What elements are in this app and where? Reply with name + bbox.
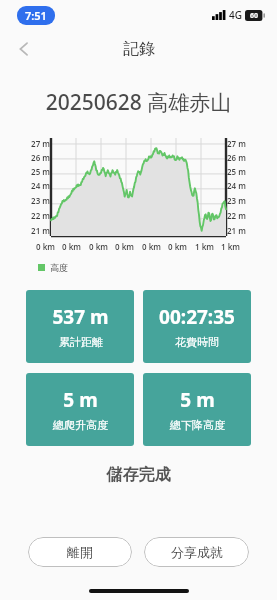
staticText: 記錄 xyxy=(123,39,155,59)
staticText: 22 m xyxy=(227,210,259,221)
staticText: 23 m xyxy=(18,195,50,206)
button[interactable]: 分享成就 xyxy=(144,537,249,567)
staticText: 5 m xyxy=(63,387,98,413)
staticText: 26 m xyxy=(227,152,259,163)
staticText: 總爬升高度 xyxy=(53,418,108,432)
staticText: 00:27:35 xyxy=(159,304,235,330)
staticText: 4G xyxy=(229,8,242,22)
staticText: 26 m xyxy=(18,152,50,163)
staticText: 0 km xyxy=(36,241,56,252)
staticText: 離開 xyxy=(67,544,93,560)
staticText: 分享成就 xyxy=(171,544,223,560)
staticText: 1 km xyxy=(221,241,241,252)
button[interactable]: 5 m xyxy=(143,373,251,446)
staticText: 25 m xyxy=(18,166,50,177)
staticText: 儲存完成 xyxy=(0,465,277,485)
staticText: 20250628 高雄赤山 xyxy=(0,88,277,117)
staticText: 0 km xyxy=(62,241,82,252)
staticText: 60 xyxy=(250,11,259,21)
staticText: 25 m xyxy=(227,166,259,177)
staticText: 累計距離 xyxy=(59,335,103,349)
staticText: 高度 xyxy=(50,262,68,273)
button[interactable]: Back xyxy=(6,31,42,67)
staticText: 總下降高度 xyxy=(170,418,225,432)
staticText: 22 m xyxy=(18,210,50,221)
staticText: 23 m xyxy=(227,195,259,206)
staticText: 537 m xyxy=(52,304,109,330)
staticText: 21 m xyxy=(18,225,50,236)
staticText: 0 km xyxy=(168,241,188,252)
button[interactable]: 離開 xyxy=(28,537,132,567)
staticText: 5 m xyxy=(180,387,215,413)
staticText: 1 km xyxy=(195,241,215,252)
staticText: 0 km xyxy=(142,241,162,252)
staticText: 0 km xyxy=(115,241,135,252)
staticText: 27 m xyxy=(18,138,50,149)
staticText: 21 m xyxy=(227,225,259,236)
staticText: 0 km xyxy=(89,241,109,252)
button[interactable]: 537 m xyxy=(26,290,134,363)
staticText: 花費時間 xyxy=(175,335,219,349)
staticText: 27 m xyxy=(227,138,259,149)
button[interactable]: 00:27:35 xyxy=(143,290,251,363)
staticText: 24 m xyxy=(18,180,50,191)
staticText: 24 m xyxy=(227,180,259,191)
button[interactable]: 5 m xyxy=(26,373,134,446)
staticText: 7:51 xyxy=(25,8,47,23)
